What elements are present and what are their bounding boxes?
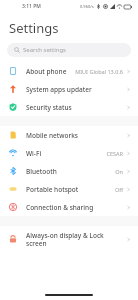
button[interactable]: System apps updater [0, 80, 138, 98]
staticText: 3:11 PM [22, 3, 41, 10]
staticText: 0.960/s [80, 4, 94, 9]
staticText: Connection & sharing [26, 203, 126, 212]
staticText: Security status [26, 103, 126, 112]
button[interactable]: About phone [0, 62, 138, 80]
button[interactable]: Connection & sharing [0, 198, 138, 216]
button[interactable]: Portable hotspot [0, 180, 138, 198]
staticText: MIUI Global 13.0.6 [75, 68, 123, 75]
staticText: Search settings [23, 46, 66, 54]
staticText: System apps updater [26, 85, 126, 94]
staticText: Always-on display & Lock screen [26, 231, 126, 248]
staticText: About phone [26, 67, 75, 76]
staticText: Settings [9, 19, 59, 37]
staticText: Bluetooth [26, 167, 115, 176]
button[interactable]: Search settings [7, 43, 131, 57]
button[interactable]: Security status [0, 98, 138, 116]
button[interactable]: Wi-Fi [0, 144, 138, 162]
staticText: Portable hotspot [26, 185, 114, 194]
staticText: Off [114, 186, 123, 193]
staticText: On [115, 168, 123, 175]
button[interactable]: Mobile networks [0, 126, 138, 144]
button[interactable]: Always-on display & Lock screen [0, 226, 138, 252]
staticText: Mobile networks [26, 131, 126, 140]
button[interactable]: Bluetooth [0, 162, 138, 180]
staticText: Wi-Fi [26, 149, 106, 158]
staticText: CESAR [106, 150, 123, 157]
